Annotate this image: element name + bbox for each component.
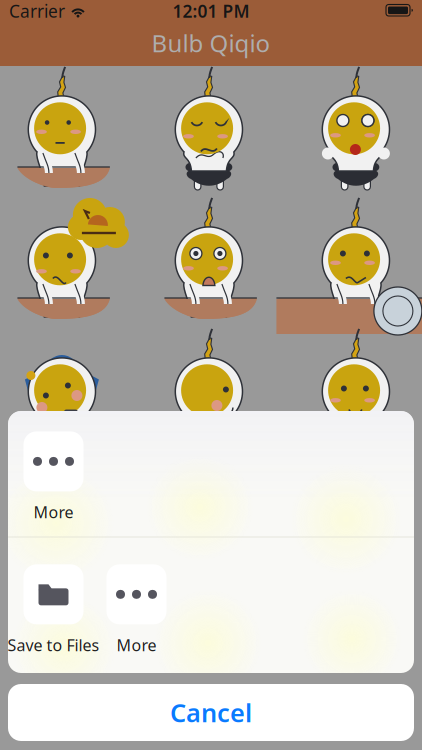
staticText: More bbox=[116, 634, 156, 655]
staticText: Cancel bbox=[170, 696, 252, 729]
staticText: Save to Files bbox=[7, 634, 99, 655]
button[interactable]: Save to Files bbox=[12, 564, 95, 655]
button[interactable]: More bbox=[12, 431, 95, 523]
staticText: More bbox=[33, 501, 73, 523]
button[interactable]: Cancel bbox=[8, 684, 414, 741]
staticText: Bulb Qiqio bbox=[151, 27, 270, 59]
staticText: Carrier bbox=[9, 0, 65, 22]
staticText: 12:01 PM bbox=[172, 0, 249, 22]
button[interactable]: More bbox=[95, 564, 178, 655]
